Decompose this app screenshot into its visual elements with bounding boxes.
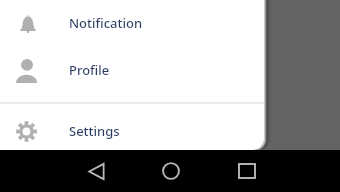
button[interactable]: Recent apps (227, 150, 266, 192)
staticText: Profile (69, 61, 110, 79)
button[interactable]: Settings (0, 112, 264, 150)
staticText: Notification (69, 14, 143, 32)
staticText: Settings (69, 122, 120, 140)
button[interactable]: Notification (0, 0, 264, 47)
button[interactable]: Back (75, 150, 114, 192)
button[interactable]: Home (151, 150, 190, 192)
button[interactable]: Profile (0, 47, 264, 94)
